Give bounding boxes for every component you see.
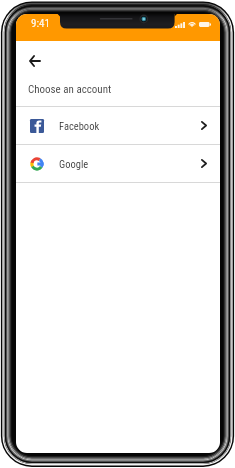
staticText: Facebook [59,120,100,132]
button[interactable]: Google [16,145,220,182]
button[interactable]: Facebook [16,107,220,144]
button[interactable]: Back [24,50,46,72]
staticText: 9:41 [31,17,50,30]
staticText: Google [59,158,89,170]
staticText: Choose an account [28,83,112,96]
